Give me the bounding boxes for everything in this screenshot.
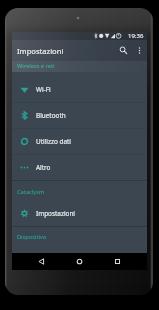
button[interactable]: Back <box>33 253 50 270</box>
staticText: Wi-Fi <box>36 85 51 94</box>
staticText: Dispositivo <box>17 233 47 241</box>
button[interactable]: Recents <box>109 253 126 270</box>
button[interactable]: Home <box>71 253 88 270</box>
button[interactable]: Search <box>115 42 132 59</box>
button[interactable]: Impostazioni <box>12 201 147 226</box>
staticText: Impostazioni <box>36 209 76 218</box>
staticText: Impostazioni <box>17 46 64 56</box>
staticText: 19:36 <box>128 32 144 40</box>
staticText: Utilizzo dati <box>36 137 71 146</box>
button[interactable]: Altro <box>12 155 147 180</box>
button[interactable]: Bluetooth <box>12 103 147 128</box>
staticText: Wireless e reti <box>17 62 55 70</box>
button[interactable]: Wi-Fi <box>12 77 147 102</box>
button[interactable]: More options <box>132 43 147 58</box>
button[interactable]: Utilizzo dati <box>12 129 147 154</box>
staticText: Bluetooth <box>36 111 66 120</box>
staticText: Cataclysm <box>17 188 45 196</box>
staticText: Altro <box>36 163 51 172</box>
